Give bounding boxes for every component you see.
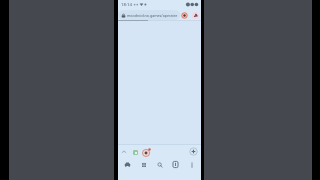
button[interactable]: Account [181, 12, 188, 19]
button[interactable]: Opera tab [141, 146, 153, 158]
button[interactable]: Bookmarks [137, 158, 150, 171]
button[interactable]: Tabs [169, 158, 182, 171]
button[interactable]: Notifications [192, 12, 199, 19]
button[interactable]: More options [185, 158, 198, 171]
staticText: 18:14 [121, 1, 132, 7]
button[interactable]: Expand tabs [119, 147, 128, 156]
button[interactable]: Home [121, 158, 134, 171]
button[interactable]: Search [153, 158, 166, 171]
button[interactable]: New tab [188, 146, 199, 157]
button[interactable]: moodroid.no.games/operatre [118, 10, 180, 20]
button[interactable]: Tab [131, 148, 139, 156]
staticText: moodroid.no.games/operatre [127, 13, 178, 18]
